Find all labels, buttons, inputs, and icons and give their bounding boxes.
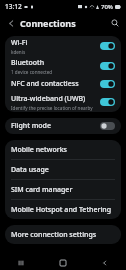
button[interactable]: Bluetooth [5, 56, 121, 76]
button[interactable]: Off [100, 122, 115, 130]
staticText: Ultra-wideband (UWB) [11, 94, 86, 104]
button[interactable]: More connection settings [5, 225, 121, 244]
staticText: Bluetooth [11, 58, 45, 68]
staticText: Data usage [11, 165, 49, 175]
button[interactable]: On [100, 80, 115, 88]
button[interactable]: Home [42, 255, 84, 270]
staticText: 70% [101, 3, 113, 11]
button[interactable]: Flight mode [5, 118, 121, 134]
staticText: kdenis [11, 49, 26, 55]
button[interactable]: Mobile Hotspot and Tethering [5, 200, 121, 219]
button[interactable]: On [100, 42, 115, 50]
button[interactable]: Back [4, 16, 18, 30]
staticText: 13:12 [5, 2, 22, 11]
staticText: More connection settings [11, 230, 97, 240]
button[interactable]: Data usage [5, 160, 121, 179]
button[interactable]: Back [84, 255, 126, 270]
staticText: Mobile Hotspot and Tethering [11, 205, 112, 215]
staticText: 1 device connected [11, 69, 53, 75]
button[interactable]: On [100, 62, 115, 70]
staticText: Identify the precise location of nearby … [11, 105, 96, 111]
staticText: Mobile networks [11, 145, 67, 155]
staticText: NFC and contactless payments [11, 79, 96, 89]
button[interactable]: On [100, 98, 115, 106]
staticText: Wi-Fi [11, 38, 28, 48]
staticText: Connections [20, 17, 76, 29]
button[interactable]: Ultra-wideband (UWB) [5, 92, 121, 112]
button[interactable]: Mobile networks [5, 140, 121, 159]
button[interactable]: NFC and contactless payments [5, 76, 121, 92]
button[interactable]: SIM card manager [5, 180, 121, 199]
button[interactable]: Wi-Fi [5, 36, 121, 56]
button[interactable]: Search [108, 16, 122, 30]
staticText: SIM card manager [11, 185, 73, 195]
staticText: Flight mode [11, 121, 51, 131]
button[interactable]: Recents [0, 255, 42, 270]
